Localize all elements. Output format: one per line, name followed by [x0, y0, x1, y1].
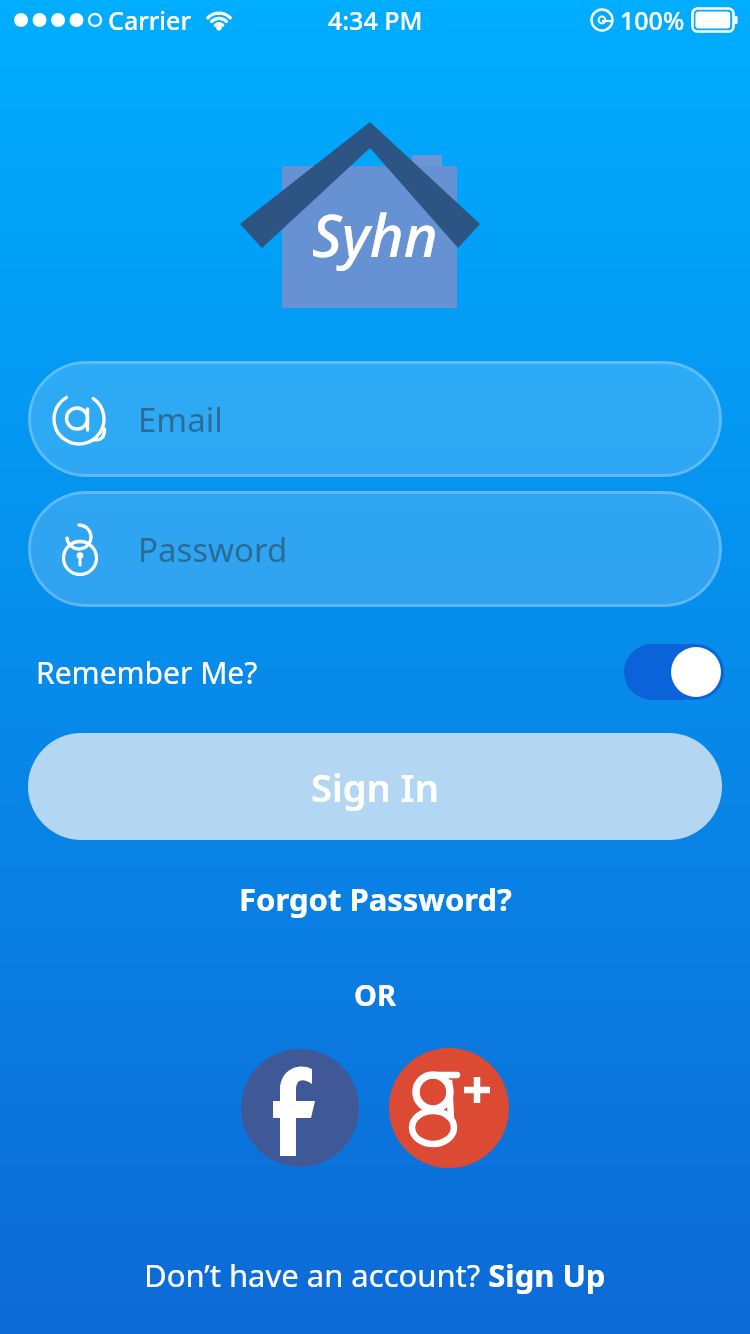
staticText: Email [138, 397, 223, 442]
staticText: 4:34 PM [328, 3, 423, 37]
button[interactable]: Password [28, 491, 722, 607]
staticText: Remember Me? [36, 652, 258, 693]
button[interactable]: Forgot Password? [223, 872, 528, 926]
staticText: 100% [620, 3, 685, 37]
staticText: Password [138, 527, 288, 572]
staticText: OR [354, 975, 396, 1014]
button[interactable]: Email [28, 361, 722, 477]
staticText: Syhn [312, 195, 438, 274]
staticText: Carrier [108, 3, 192, 37]
button[interactable]: Sign in with Google Plus [389, 1048, 509, 1168]
button[interactable]: Remember Me toggle, on [624, 644, 724, 700]
staticText: Forgot Password? [239, 878, 512, 920]
button[interactable]: Sign in with Facebook [241, 1049, 359, 1167]
staticText: Don’t have an account? Sign Up [144, 1254, 606, 1296]
button[interactable]: Sign In [28, 733, 722, 840]
button[interactable]: Don’t have an account? Sign Up [132, 1248, 618, 1302]
staticText: Sign In [311, 761, 439, 813]
